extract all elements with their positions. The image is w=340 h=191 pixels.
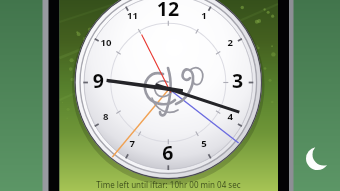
button[interactable]: Ramadan prayer clock [0,0,340,191]
